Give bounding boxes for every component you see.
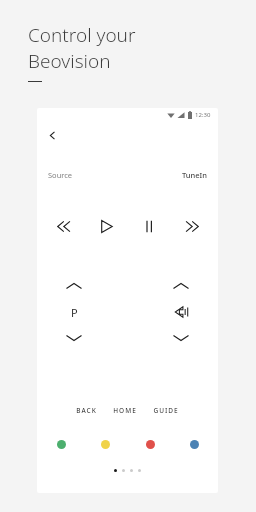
button[interactable]: Yellow button [97, 436, 113, 452]
staticText: Beovision [28, 48, 111, 74]
staticText: HOME [113, 406, 137, 415]
button[interactable]: Program down [59, 328, 89, 348]
button[interactable]: Green button [53, 436, 69, 452]
button[interactable]: BACK [74, 402, 99, 419]
button[interactable]: GUIDE [151, 402, 181, 419]
button[interactable]: Rewind [51, 213, 77, 239]
staticText: BACK [76, 406, 97, 415]
staticText: P [71, 305, 78, 320]
staticText: Control your [28, 22, 136, 48]
button[interactable]: Play [93, 213, 119, 239]
button[interactable]: Volume up [166, 276, 196, 296]
staticText: Source [48, 170, 73, 180]
staticText: GUIDE [153, 406, 179, 415]
button[interactable]: Volume down [166, 328, 196, 348]
button[interactable]: Fast forward [178, 213, 204, 239]
button[interactable]: Program up [59, 276, 89, 296]
button[interactable]: Back [42, 125, 62, 145]
button[interactable]: Pause [136, 213, 162, 239]
button[interactable]: HOME [111, 402, 139, 419]
button[interactable]: Source [48, 170, 207, 180]
button[interactable]: Red button [142, 436, 158, 452]
button[interactable]: Blue button [186, 436, 202, 452]
staticText: TuneIn [182, 170, 207, 180]
staticText: 12:30 [195, 111, 211, 119]
